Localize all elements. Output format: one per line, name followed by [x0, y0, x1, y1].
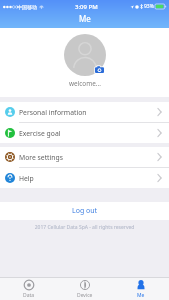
- button[interactable]: Help: [0, 168, 169, 188]
- staticText: Me: [137, 292, 145, 299]
- button[interactable]: Change profile photo: [94, 64, 105, 75]
- staticText: Personal information: [19, 108, 87, 117]
- staticText: Device: [77, 292, 93, 299]
- button[interactable]: Me: [113, 278, 169, 300]
- staticText: Log out: [72, 206, 98, 216]
- staticText: 93%: [144, 3, 154, 10]
- button[interactable]: Device: [57, 278, 113, 300]
- button[interactable]: Log out: [0, 202, 169, 220]
- button[interactable]: Exercise goal: [0, 123, 169, 143]
- staticText: welcome...: [69, 79, 101, 88]
- staticText: 中国移动: [17, 4, 37, 10]
- staticText: Help: [19, 174, 34, 183]
- button[interactable]: Personal information: [0, 102, 169, 122]
- staticText: Exercise goal: [19, 129, 61, 138]
- staticText: Data: [23, 292, 35, 299]
- staticText: 2017 Cellular Data SpA - all rights rese…: [0, 224, 169, 231]
- staticText: 3:09 PM: [75, 3, 98, 11]
- staticText: More settings: [19, 153, 63, 162]
- staticText: Me: [79, 13, 91, 24]
- button[interactable]: Data: [0, 278, 57, 300]
- button[interactable]: More settings: [0, 147, 169, 167]
